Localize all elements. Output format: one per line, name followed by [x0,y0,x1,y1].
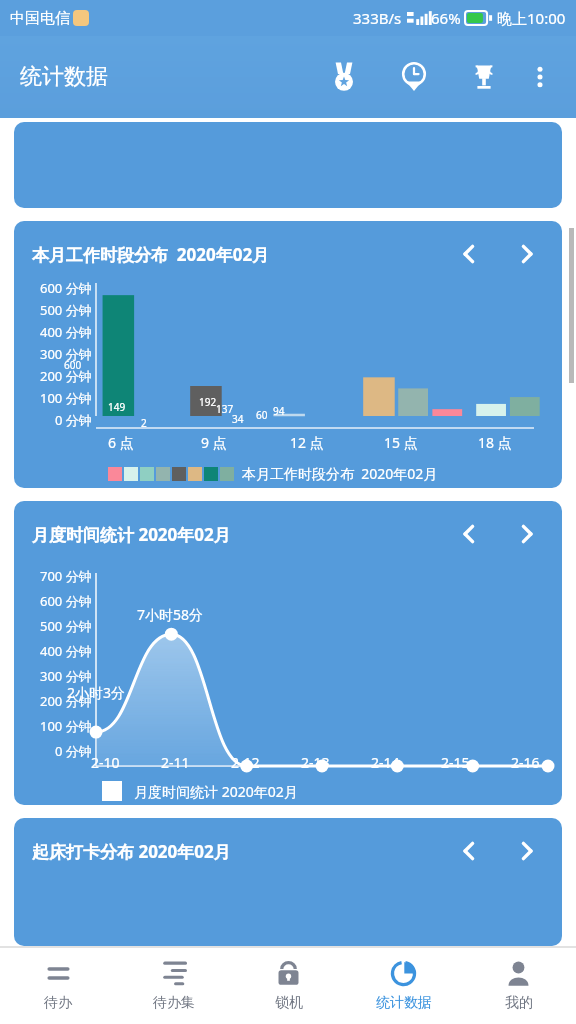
staticText: 2-12 [231,753,260,772]
staticText: 66% [431,8,461,28]
staticText: 0 分钟 [55,411,92,429]
staticText: 9 点 [201,433,227,452]
staticText: 起床打卡分布 2020年02月 [32,840,231,863]
staticText: 192 [199,395,217,409]
staticText: 600 [64,358,82,372]
button[interactable]: Trophy [460,53,508,101]
button[interactable]: Next [508,235,546,273]
staticText: 统计数据 [376,994,432,1012]
button[interactable]: 待办 [0,948,116,1024]
staticText: 我的 [505,994,533,1012]
staticText: 500 分钟 [40,617,92,635]
staticText: 400 分钟 [40,323,92,341]
staticText: 300 分钟 [40,667,92,685]
staticText: 200 分钟 [40,692,92,710]
button[interactable]: Medal [320,53,368,101]
staticText: 6 点 [108,433,134,452]
staticText: 2-14 [371,753,400,772]
button[interactable]: 统计数据 [346,948,461,1024]
staticText: 2 [141,416,147,430]
button[interactable]: 起床打卡分布 2020年02月 [14,818,562,946]
button[interactable]: Next [508,515,546,553]
staticText: 94 [273,404,285,418]
staticText: 0 分钟 [55,742,92,760]
staticText: 本月工作时段分布 2020年02月 [242,464,438,483]
staticText: 待办 [44,994,72,1012]
staticText: 400 分钟 [40,642,92,660]
staticText: 300 分钟 [40,345,92,363]
staticText: 2-16 [511,753,540,772]
staticText: 600 分钟 [40,592,92,610]
staticText: 600 分钟 [40,279,92,297]
staticText: 本月工作时段分布 2020年02月 [32,243,270,266]
button[interactable]: More options [518,55,562,99]
staticText: 18 点 [478,433,512,452]
button[interactable]: 待办集 [116,948,231,1024]
staticText: 60 [256,408,268,422]
button[interactable]: 月度时间统计 2020年02月 [14,501,562,805]
staticText: 15 点 [384,433,418,452]
staticText: 149 [108,400,126,414]
button[interactable]: Previous [450,235,488,273]
staticText: 2-13 [301,753,330,772]
staticText: 2-11 [161,753,190,772]
button[interactable]: 本月工作时段分布 2020年02月 [14,221,562,488]
staticText: 200 分钟 [40,367,92,385]
staticText: 统计数据 [20,63,108,91]
staticText: 锁机 [275,994,303,1012]
button[interactable]: Previous [450,515,488,553]
button[interactable]: 我的 [461,948,576,1024]
staticText: 7小时58分 [137,605,204,624]
staticText: 700 分钟 [40,567,92,585]
button[interactable]: 锁机 [231,948,346,1024]
staticText: 月度时间统计 2020年02月 [134,782,298,801]
staticText: 12 点 [290,433,324,452]
staticText: 晚上10:00 [497,8,566,28]
button[interactable]: History [390,53,438,101]
staticText: 中国电信 [10,9,70,28]
staticText: 待办集 [153,994,195,1012]
button[interactable]: Next [508,832,546,870]
staticText: 100 分钟 [40,389,92,407]
staticText: 2-10 [91,753,120,772]
staticText: 333B/s [353,8,402,28]
staticText: 137 [216,402,234,416]
staticText: 100 分钟 [40,717,92,735]
staticText: 34 [232,412,244,426]
staticText: 2小时3分 [67,683,126,702]
button[interactable] [14,122,562,208]
button[interactable]: Previous [450,832,488,870]
staticText: 2-15 [441,753,470,772]
staticText: 月度时间统计 2020年02月 [32,523,231,546]
staticText: 500 分钟 [40,301,92,319]
